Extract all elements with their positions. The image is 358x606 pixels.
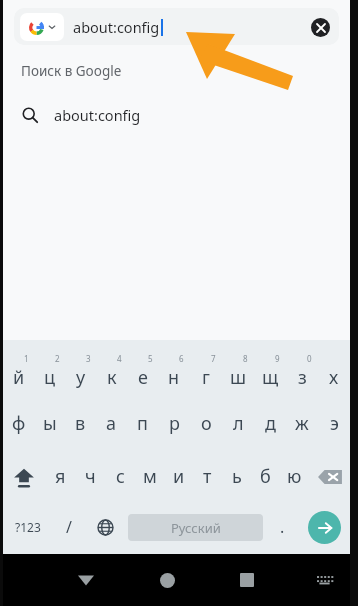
button[interactable]: ч: [75, 450, 105, 503]
staticText: т: [203, 464, 212, 489]
button[interactable]: Recent apps: [224, 557, 270, 603]
staticText: 5: [148, 353, 153, 364]
staticText: 1: [24, 353, 29, 364]
button[interactable]: 4: [96, 344, 127, 397]
staticText: я: [55, 464, 66, 489]
button[interactable]: 7: [190, 344, 222, 397]
staticText: р: [169, 411, 180, 436]
staticText: д: [265, 411, 276, 436]
button[interactable]: я: [45, 450, 75, 503]
button[interactable]: ь: [222, 450, 251, 503]
button[interactable]: ж: [286, 397, 318, 450]
staticText: м: [143, 464, 157, 489]
staticText: 4: [117, 353, 122, 364]
staticText: 3: [86, 353, 91, 364]
staticText: ф: [12, 411, 26, 436]
staticText: п: [137, 411, 148, 436]
staticText: з: [298, 365, 307, 390]
button[interactable]: Back: [63, 557, 109, 603]
button[interactable]: Search engine: [14, 8, 339, 45]
staticText: б: [260, 464, 271, 489]
button[interactable]: т: [193, 450, 222, 503]
staticText: е: [138, 365, 148, 390]
button[interactable]: р: [158, 397, 190, 450]
button[interactable]: б: [251, 450, 280, 503]
staticText: х: [329, 365, 339, 390]
button[interactable]: о: [190, 397, 222, 450]
button[interactable]: 9: [254, 344, 286, 397]
staticText: й: [13, 365, 25, 390]
button[interactable]: Change language: [85, 503, 125, 551]
button[interactable]: Search: [308, 511, 341, 544]
staticText: э: [330, 411, 339, 436]
staticText: а: [106, 411, 117, 436]
button[interactable]: э: [318, 397, 350, 450]
button[interactable]: Home: [144, 557, 190, 603]
button[interactable]: ю: [280, 450, 309, 503]
button[interactable]: Русский: [128, 514, 263, 541]
button[interactable]: ы: [34, 397, 65, 450]
button[interactable]: х: [318, 344, 350, 397]
staticText: 2: [55, 353, 60, 364]
staticText: ю: [287, 464, 302, 489]
staticText: ж: [295, 411, 309, 436]
staticText: ы: [43, 411, 57, 436]
staticText: /: [66, 516, 72, 538]
staticText: к: [107, 365, 117, 390]
staticText: 9: [275, 353, 280, 364]
staticText: ш: [230, 365, 247, 390]
staticText: 7: [211, 353, 216, 364]
button[interactable]: п: [127, 397, 158, 450]
button[interactable]: Backspace: [309, 450, 350, 503]
button[interactable]: /: [53, 503, 85, 551]
staticText: Русский: [171, 519, 221, 537]
staticText: 8: [243, 353, 248, 364]
button[interactable]: 8: [222, 344, 254, 397]
button[interactable]: 2: [34, 344, 65, 397]
staticText: ь: [232, 464, 242, 489]
button[interactable]: 3: [65, 344, 96, 397]
staticText: и: [173, 464, 185, 489]
button[interactable]: 5: [127, 344, 158, 397]
button[interactable]: 6: [158, 344, 190, 397]
staticText: у: [76, 365, 86, 390]
button[interactable]: Search engine: [20, 13, 64, 41]
staticText: в: [75, 411, 86, 436]
button[interactable]: 0: [286, 344, 318, 397]
button[interactable]: ф: [3, 397, 34, 450]
staticText: ц: [44, 365, 56, 390]
button[interactable]: м: [135, 450, 164, 503]
button[interactable]: л: [222, 397, 254, 450]
button[interactable]: Keyboard: [304, 560, 344, 600]
button[interactable]: about:config: [3, 98, 350, 132]
button[interactable]: д: [254, 397, 286, 450]
button[interactable]: 1: [3, 344, 34, 397]
button[interactable]: и: [164, 450, 193, 503]
staticText: .: [280, 516, 285, 538]
button[interactable]: в: [65, 397, 96, 450]
staticText: о: [201, 411, 212, 436]
button[interactable]: ?123: [3, 503, 53, 551]
staticText: about:config: [54, 105, 141, 125]
staticText: ч: [85, 464, 96, 489]
staticText: Поиск в Google: [21, 62, 122, 80]
staticText: л: [233, 411, 244, 436]
button[interactable]: с: [105, 450, 135, 503]
staticText: н: [168, 365, 180, 390]
button[interactable]: Clear: [303, 10, 337, 44]
button[interactable]: Shift: [3, 450, 45, 503]
staticText: щ: [262, 365, 279, 390]
button[interactable]: .: [266, 503, 298, 551]
staticText: about:config: [73, 17, 160, 37]
staticText: г: [202, 365, 210, 390]
staticText: ?123: [15, 519, 41, 535]
staticText: с: [116, 464, 125, 489]
staticText: 6: [179, 353, 184, 364]
button[interactable]: а: [96, 397, 127, 450]
staticText: 0: [307, 353, 312, 364]
